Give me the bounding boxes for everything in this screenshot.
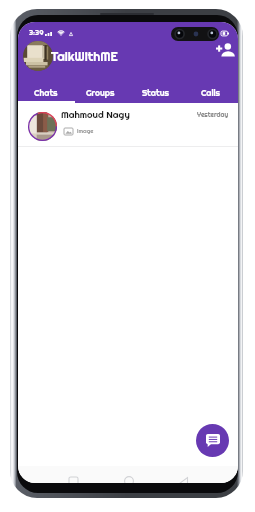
button[interactable]: Groups [73,83,128,103]
button[interactable]: Chats [18,83,73,103]
staticText: Status [142,88,169,99]
button[interactable]: Recents [64,473,81,483]
button[interactable]: Calls [183,83,238,103]
staticText: 3:39 [29,28,44,37]
button[interactable]: Back [174,473,191,483]
button[interactable]: New chat [196,424,229,457]
staticText: TalkWithME [51,49,118,65]
staticText: image [77,127,94,134]
staticText: Groups [86,88,115,99]
button[interactable]: Profile [23,41,53,71]
button[interactable]: Status [128,83,183,103]
staticText: Mahmoud Nagy [61,109,130,121]
button[interactable]: Mahmoud Nagy [18,103,238,146]
staticText: Yesterday [197,111,229,119]
staticText: Chats [34,88,58,99]
button[interactable]: Home [120,473,137,483]
button[interactable]: Add contact [212,41,236,65]
staticText: Calls [201,88,220,99]
